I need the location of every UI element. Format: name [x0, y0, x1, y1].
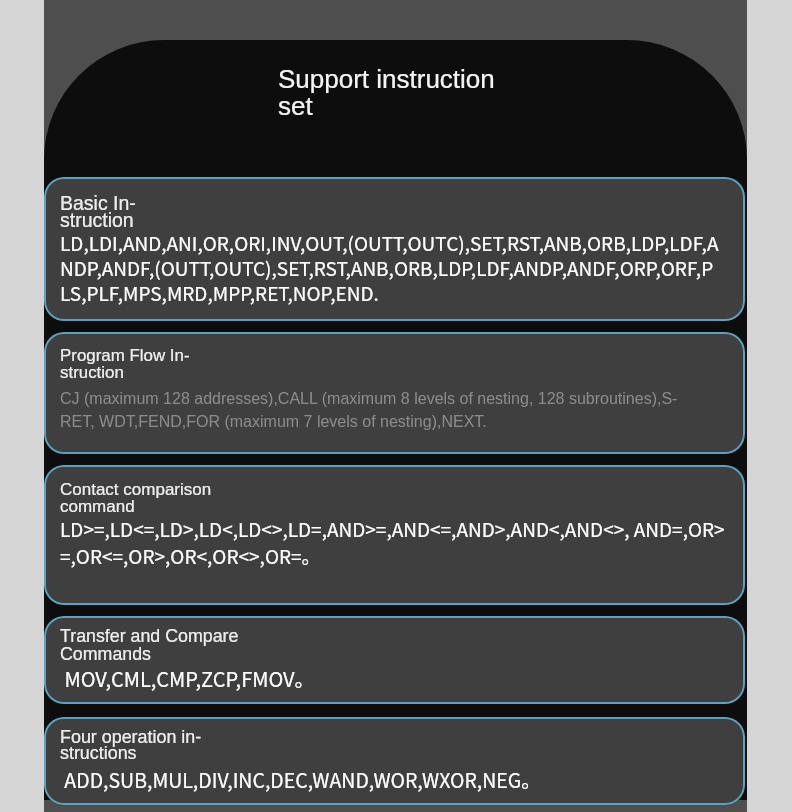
staticText: ADD,SUB,MUL,DIV,INC,DEC,WAND,WOR,WXOR,NE… — [60, 765, 541, 793]
staticText: MOV,CML,CMP,ZCP,FMOV。 — [60, 664, 315, 693]
staticText: Contact comparison command — [60, 480, 212, 516]
button[interactable]: Program Flow In- struction — [44, 332, 745, 454]
staticText: Support instruction set — [278, 64, 495, 121]
staticText: CJ (maximum 128 addresses),CALL (maximum… — [60, 390, 678, 430]
staticText: LD>=,LD<=,LD>,LD<,LD<>,LD=,AND>=,AND<=,A… — [60, 515, 725, 569]
button[interactable]: Basic In- struction — [44, 177, 745, 321]
button[interactable]: Transfer and Compare Commands — [44, 616, 745, 704]
button[interactable]: Contact comparison command — [44, 465, 745, 605]
staticText: LD,LDI,AND,ANI,OR,ORI,INV,OUT,(OUTT,OUTC… — [60, 229, 719, 307]
staticText: Four operation in- structions — [60, 727, 202, 763]
staticText: Transfer and Compare Commands — [60, 626, 239, 664]
button[interactable]: Four operation in- structions — [44, 717, 745, 805]
staticText: Program Flow In- struction — [60, 346, 190, 382]
staticText: Basic In- struction — [60, 192, 136, 231]
